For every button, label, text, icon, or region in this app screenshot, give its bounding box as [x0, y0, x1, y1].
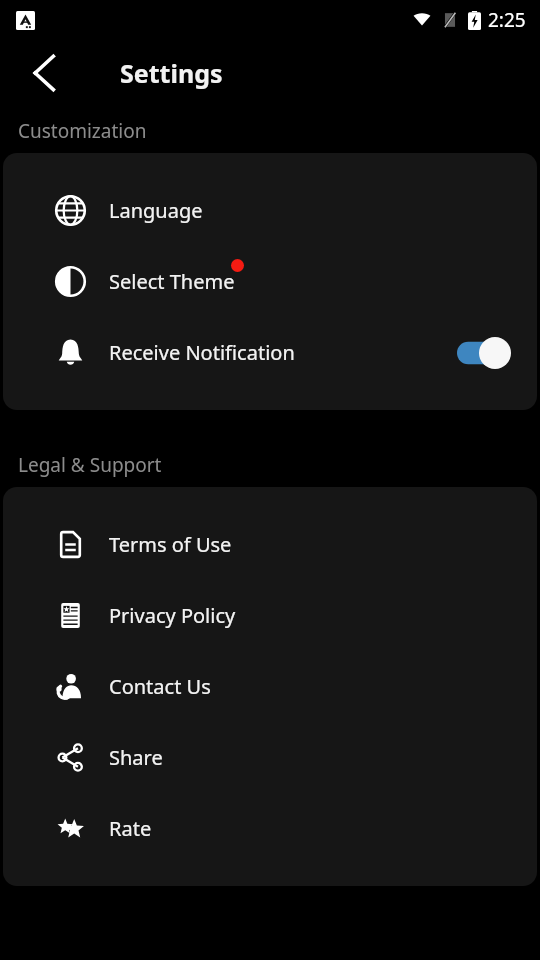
staticText: Customization	[18, 118, 147, 144]
button[interactable]: Language	[3, 175, 537, 246]
staticText: Receive Notification	[109, 339, 295, 366]
button[interactable]: Receive Notification	[3, 317, 537, 388]
button[interactable]: Receive Notification toggle	[457, 337, 511, 369]
staticText: Language	[109, 197, 203, 224]
staticText: Legal & Support	[18, 452, 162, 478]
button[interactable]: Contact Us	[3, 651, 537, 722]
staticText: Share	[109, 744, 163, 771]
button[interactable]: Terms of Use	[3, 509, 537, 580]
staticText: Rate	[109, 815, 152, 842]
staticText: Settings	[120, 56, 223, 90]
staticText: 2:25	[488, 7, 526, 33]
staticText: Privacy Policy	[109, 602, 236, 629]
button[interactable]: Select Theme	[3, 246, 537, 317]
button[interactable]: Back	[18, 47, 70, 99]
button[interactable]: Privacy Policy	[3, 580, 537, 651]
staticText: Terms of Use	[109, 531, 232, 558]
button[interactable]: Rate	[3, 793, 537, 864]
button[interactable]: Share	[3, 722, 537, 793]
staticText: Contact Us	[109, 673, 211, 700]
staticText: Select Theme	[109, 268, 235, 295]
